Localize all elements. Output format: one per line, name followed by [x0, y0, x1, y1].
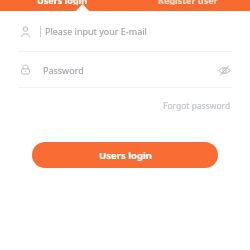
button[interactable]: Please input your E-mail — [0, 11, 250, 51]
button[interactable]: Users login — [32, 142, 218, 168]
button[interactable]: Show password — [216, 62, 232, 78]
staticText: Please input your E-mail — [45, 25, 147, 37]
staticText: Forgot password — [163, 100, 231, 112]
staticText: Users login — [37, 0, 88, 5]
staticText: Users login — [99, 149, 152, 162]
button[interactable]: Users login — [0, 0, 125, 11]
button[interactable]: Password — [0, 52, 250, 87]
button[interactable]: Register user — [125, 0, 250, 11]
button[interactable]: Forgot password — [161, 97, 233, 115]
staticText: Register user — [158, 0, 218, 5]
staticText: Password — [43, 64, 84, 76]
